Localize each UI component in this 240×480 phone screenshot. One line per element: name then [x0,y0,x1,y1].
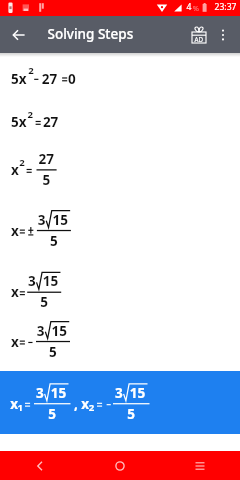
button[interactable]: Back [0,451,80,480]
button[interactable]: Navigate up [5,16,33,53]
button[interactable]: More options [208,20,237,49]
button[interactable]: Recent apps [160,451,240,480]
button[interactable]: Home [80,451,160,480]
button[interactable] [0,371,240,435]
button[interactable]: Reward ad [184,20,213,49]
